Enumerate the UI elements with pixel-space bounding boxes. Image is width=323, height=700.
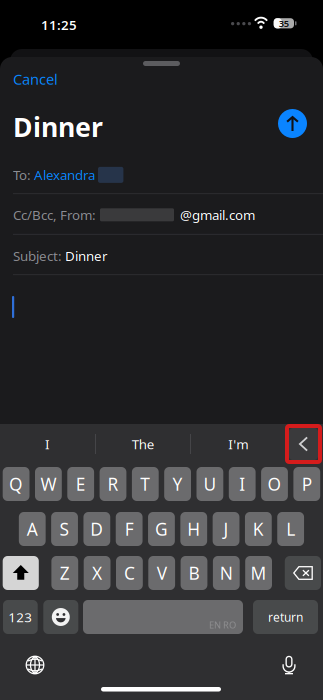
staticText: C: [124, 561, 135, 584]
staticText: I'm: [228, 435, 248, 453]
button[interactable]: L: [277, 512, 304, 546]
button[interactable]: M: [245, 556, 272, 590]
staticText: Cc/Bcc, From:: [13, 206, 96, 224]
staticText: 11:25: [41, 16, 77, 34]
staticText: return: [268, 609, 303, 625]
button[interactable]: Hide predictions: [289, 428, 318, 460]
staticText: W: [40, 472, 56, 495]
staticText: Dinner: [65, 247, 108, 265]
staticText: I: [45, 435, 50, 453]
button[interactable]: Dictation: [272, 648, 306, 682]
button[interactable]: F: [116, 512, 143, 546]
button[interactable]: I: [0, 424, 95, 464]
button[interactable]: U: [196, 467, 223, 501]
button[interactable]: I'm: [191, 424, 286, 464]
button[interactable]: B: [181, 556, 207, 590]
staticText: A: [27, 517, 38, 540]
staticText: R: [107, 472, 118, 495]
staticText: N: [220, 561, 233, 584]
staticText: 35: [279, 17, 289, 29]
staticText: U: [203, 472, 216, 495]
button[interactable]: I: [229, 467, 256, 501]
button[interactable]: D: [83, 512, 110, 546]
button[interactable]: Z: [51, 556, 78, 590]
button[interactable]: E: [67, 467, 94, 501]
staticText: S: [59, 517, 69, 540]
staticText: O: [267, 472, 281, 495]
button[interactable]: N: [213, 556, 240, 590]
staticText: D: [90, 517, 103, 540]
button[interactable]: The: [96, 424, 191, 464]
staticText: L: [286, 517, 295, 540]
staticText: Subject:: [13, 247, 62, 265]
button[interactable]: A: [19, 512, 46, 546]
staticText: Z: [60, 561, 70, 584]
staticText: T: [140, 472, 150, 495]
staticText: V: [157, 561, 167, 584]
button[interactable]: 123: [3, 600, 38, 634]
button[interactable]: G: [148, 512, 175, 546]
button[interactable]: Next keyboard: [18, 648, 52, 682]
button[interactable]: S: [51, 512, 78, 546]
button[interactable]: V: [148, 556, 175, 590]
button[interactable]: Y: [164, 467, 191, 501]
staticText: The: [132, 435, 155, 453]
staticText: X: [92, 561, 102, 584]
button[interactable]: R: [100, 467, 126, 501]
staticText: Y: [173, 472, 183, 495]
staticText: Cancel: [13, 69, 58, 89]
button[interactable]: C: [116, 556, 143, 590]
button[interactable]: W: [35, 467, 62, 501]
staticText: F: [125, 517, 134, 540]
staticText: G: [155, 517, 168, 540]
staticText: Dinner: [13, 109, 103, 144]
button[interactable]: O: [261, 467, 288, 501]
button[interactable]: H: [180, 512, 207, 546]
button[interactable]: Shift: [3, 556, 39, 590]
button[interactable]: K: [245, 512, 272, 546]
staticText: Q: [9, 472, 23, 495]
staticText: J: [224, 517, 229, 540]
button[interactable]: space: [83, 600, 243, 634]
staticText: E: [76, 472, 86, 495]
staticText: I: [239, 472, 245, 495]
staticText: M: [251, 561, 267, 584]
staticText: B: [188, 561, 199, 584]
button[interactable]: Emoji: [43, 600, 78, 634]
button[interactable]: T: [132, 467, 159, 501]
button[interactable]: Cancel: [13, 69, 58, 89]
staticText: Alexandra: [34, 166, 95, 184]
button[interactable]: P: [293, 467, 320, 501]
button[interactable]: X: [84, 556, 110, 590]
staticText: 123: [8, 608, 32, 626]
staticText: @gmail.com: [180, 206, 255, 224]
button[interactable]: return: [253, 600, 318, 634]
staticText: To:: [13, 166, 31, 184]
staticText: H: [187, 517, 200, 540]
button[interactable]: Q: [3, 467, 29, 501]
staticText: EN RO: [209, 619, 236, 631]
staticText: K: [253, 517, 264, 540]
button[interactable]: Send: [278, 109, 307, 138]
staticText: P: [302, 472, 312, 495]
button[interactable]: Delete: [285, 556, 321, 590]
button[interactable]: J: [213, 512, 239, 546]
